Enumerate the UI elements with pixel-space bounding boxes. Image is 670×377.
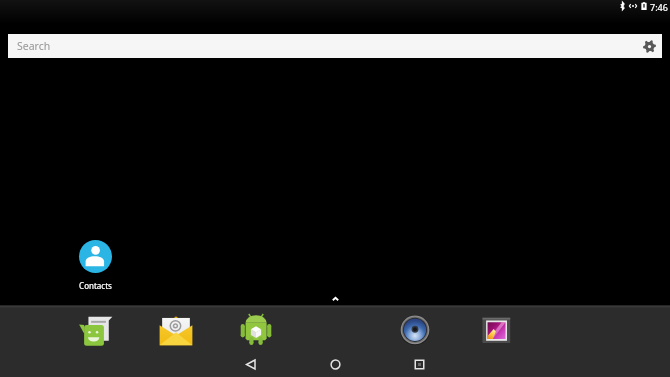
button[interactable]: Email xyxy=(158,308,194,352)
button[interactable]: Back xyxy=(235,352,265,377)
button[interactable]: Gallery xyxy=(478,308,514,352)
staticText: Contacts xyxy=(79,280,112,291)
button[interactable]: Messaging xyxy=(78,308,114,352)
button[interactable]: Search settings xyxy=(636,34,662,58)
button[interactable]: All apps xyxy=(325,288,345,307)
button[interactable]: Camera xyxy=(397,308,433,352)
staticText: 7:46 xyxy=(650,1,668,13)
button[interactable]: Contacts xyxy=(67,240,123,291)
button[interactable]: Dev Tools xyxy=(238,308,274,352)
button[interactable]: Recents xyxy=(404,352,434,377)
button[interactable]: Home xyxy=(320,352,350,377)
staticText: Search xyxy=(17,39,51,53)
button[interactable]: Search xyxy=(8,34,662,58)
